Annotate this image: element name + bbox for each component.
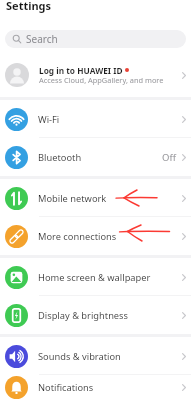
button[interactable]: Mobile network: [0, 179, 191, 217]
staticText: Access Cloud, AppGallery, and more: [39, 75, 164, 85]
staticText: Search: [26, 32, 58, 46]
button[interactable]: Home screen & wallpaper: [0, 258, 191, 296]
staticText: Mobile network: [38, 192, 182, 205]
button[interactable]: More connections: [0, 217, 191, 255]
staticText: Bluetooth: [38, 151, 162, 164]
staticText: More connections: [38, 230, 182, 243]
staticText: Log in to HUAWEI ID: [39, 65, 123, 76]
button[interactable]: Wi-Fi: [0, 100, 191, 138]
staticText: Sounds & vibration: [38, 350, 182, 363]
staticText: Off: [162, 151, 176, 164]
button[interactable]: Log in to HUAWEI ID: [0, 51, 191, 99]
button[interactable]: Display & brightness: [0, 296, 191, 334]
staticText: Notifications: [38, 381, 182, 394]
staticText: Settings: [6, 0, 52, 13]
button[interactable]: Notifications: [0, 375, 191, 400]
staticText: Home screen & wallpaper: [38, 271, 182, 284]
button[interactable]: Bluetooth: [0, 138, 191, 176]
staticText: Display & brightness: [38, 309, 182, 322]
staticText: Wi-Fi: [38, 113, 182, 126]
button[interactable]: Search: [5, 30, 186, 48]
button[interactable]: Sounds & vibration: [0, 337, 191, 375]
